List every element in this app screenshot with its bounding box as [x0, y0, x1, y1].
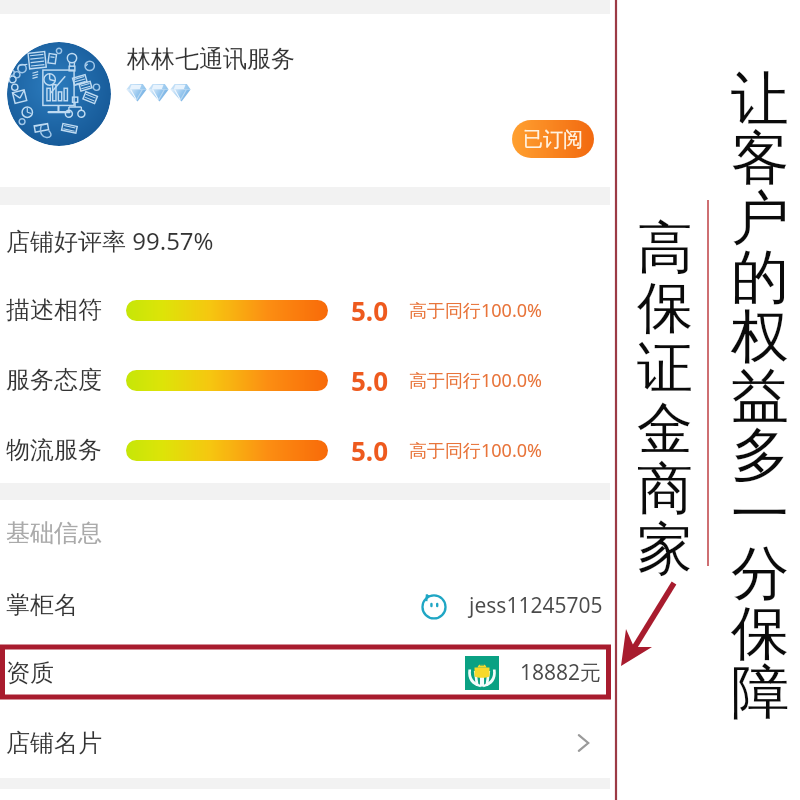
button[interactable]: 店铺头像 [7, 42, 111, 146]
button[interactable]: 描述相符 [0, 287, 616, 333]
staticText: 客 [731, 122, 789, 195]
staticText: 已订阅 [523, 127, 583, 152]
staticText: 障 [731, 656, 789, 729]
staticText: 物流服务 [6, 435, 102, 465]
staticText: 描述相符 [6, 295, 102, 325]
staticText: 高 [637, 213, 693, 284]
button[interactable]: 掌柜名 [0, 575, 616, 635]
button[interactable]: 服务态度 [0, 357, 616, 403]
button[interactable]: 店铺名片 [0, 715, 616, 771]
staticText: 基础信息 [6, 518, 102, 548]
staticText: 保 [637, 273, 693, 344]
staticText: 权 [731, 300, 789, 373]
staticText: 服务态度 [6, 365, 102, 395]
staticText: 5.0 [351, 433, 389, 468]
staticText: 金 [637, 394, 693, 465]
staticText: 高于同行100.0% [409, 368, 542, 393]
staticText: 店铺名片 [6, 728, 102, 758]
other: 保证金 [465, 656, 499, 690]
button[interactable]: 林林七通讯服务 [127, 44, 295, 74]
staticText: 多 [731, 419, 789, 492]
staticText: 的 [731, 241, 789, 314]
other: 展开 [570, 730, 596, 756]
staticText: 18882元 [520, 658, 602, 687]
staticText: 证 [637, 333, 693, 404]
staticText: 分 [731, 537, 789, 610]
button[interactable]: 已订阅 [512, 120, 594, 158]
staticText: 一 [731, 478, 789, 551]
staticText: 家 [637, 514, 693, 585]
staticText: 店铺好评率 99.57% [6, 224, 214, 257]
staticText: 5.0 [351, 293, 389, 328]
staticText: 户 [731, 182, 789, 255]
button[interactable]: 物流服务 [0, 427, 616, 473]
staticText: 益 [731, 360, 789, 433]
other: 旺旺 [418, 589, 450, 621]
staticText: 资质 [6, 658, 54, 688]
staticText: 高于同行100.0% [409, 298, 542, 323]
staticText: 掌柜名 [6, 590, 78, 620]
staticText: 林林七通讯服务 [127, 44, 295, 74]
staticText: 让 [731, 63, 789, 136]
staticText: jess11245705 [469, 591, 603, 620]
button[interactable]: 资质 [0, 645, 616, 700]
staticText: 高于同行100.0% [409, 438, 542, 463]
staticText: 商 [637, 454, 693, 525]
staticText: 保 [731, 597, 789, 670]
staticText: 5.0 [351, 363, 389, 398]
